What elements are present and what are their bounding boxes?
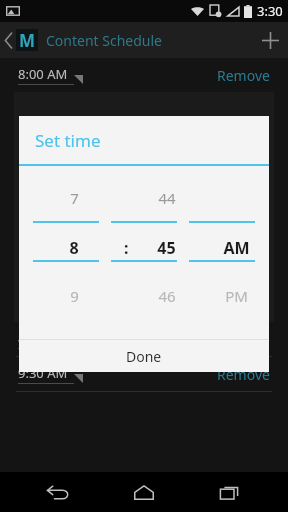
- staticText: AM: [223, 237, 250, 259]
- button[interactable]: Back: [30, 472, 86, 512]
- button[interactable]: Done: [19, 340, 269, 372]
- staticText: 45: [157, 237, 176, 259]
- staticText: 9: [70, 286, 79, 306]
- staticText: 46: [158, 286, 176, 306]
- staticText: 8:45 AM: [18, 329, 68, 347]
- staticText: 3:30: [257, 2, 283, 20]
- button[interactable]: Remove: [217, 330, 270, 349]
- staticText: 44: [158, 188, 176, 208]
- button[interactable]: 8:00 AM: [0, 58, 288, 92]
- staticText: 8: [69, 237, 79, 259]
- staticText: 7: [70, 188, 79, 208]
- button[interactable]: Add: [252, 22, 288, 58]
- staticText: Done: [126, 347, 162, 366]
- staticText: 9:30 AM: [18, 364, 68, 382]
- button[interactable]: Recent apps: [202, 472, 258, 512]
- staticText: Content Schedule: [46, 31, 162, 50]
- staticText: :: [124, 237, 129, 259]
- staticText: M: [19, 29, 36, 51]
- button[interactable]: Remove: [217, 66, 270, 85]
- button[interactable]: 9:30 AM: [0, 357, 288, 391]
- staticText: 8:00 AM: [18, 65, 68, 83]
- button[interactable]: Navigate up: [0, 23, 40, 57]
- staticText: PM: [225, 286, 248, 306]
- staticText: Set time: [35, 129, 101, 152]
- button[interactable]: Remove: [217, 365, 270, 384]
- button[interactable]: 8:45 AM: [0, 322, 288, 356]
- button[interactable]: Home: [116, 472, 172, 512]
